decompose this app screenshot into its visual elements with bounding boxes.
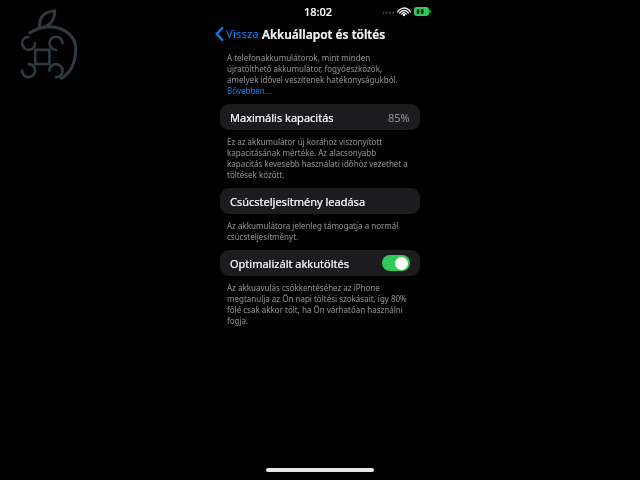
other: Optimalizált akkutöltés bekapcsolva [382,255,410,271]
staticText: Vissza [226,26,259,42]
staticText: Az akkumulátora jelenleg támogatja a nor… [227,220,413,242]
staticText: Csúcsteljesítmény leadása [230,194,366,209]
button[interactable]: Maximális kapacitás [220,104,420,130]
staticText: Maximális kapacitás [230,110,334,125]
button[interactable]: Vissza [214,24,261,44]
staticText: 85% [388,110,410,125]
button[interactable]: Csúcsteljesítmény leadása [220,188,420,214]
staticText: Ez az akkumulátor új korához viszonyítot… [227,136,413,180]
staticText: A telefonakkumulátorok, mint minden újra… [227,52,413,96]
staticText: Optimalizált akkutöltés [230,256,349,271]
staticText: 18:02 [304,4,333,19]
staticText: Az akkuavulás csökkentéséhez az iPhone m… [227,282,413,326]
staticText: Akkuállapot és töltés [262,26,386,42]
button[interactable]: Optimalizált akkutöltés [220,250,420,276]
